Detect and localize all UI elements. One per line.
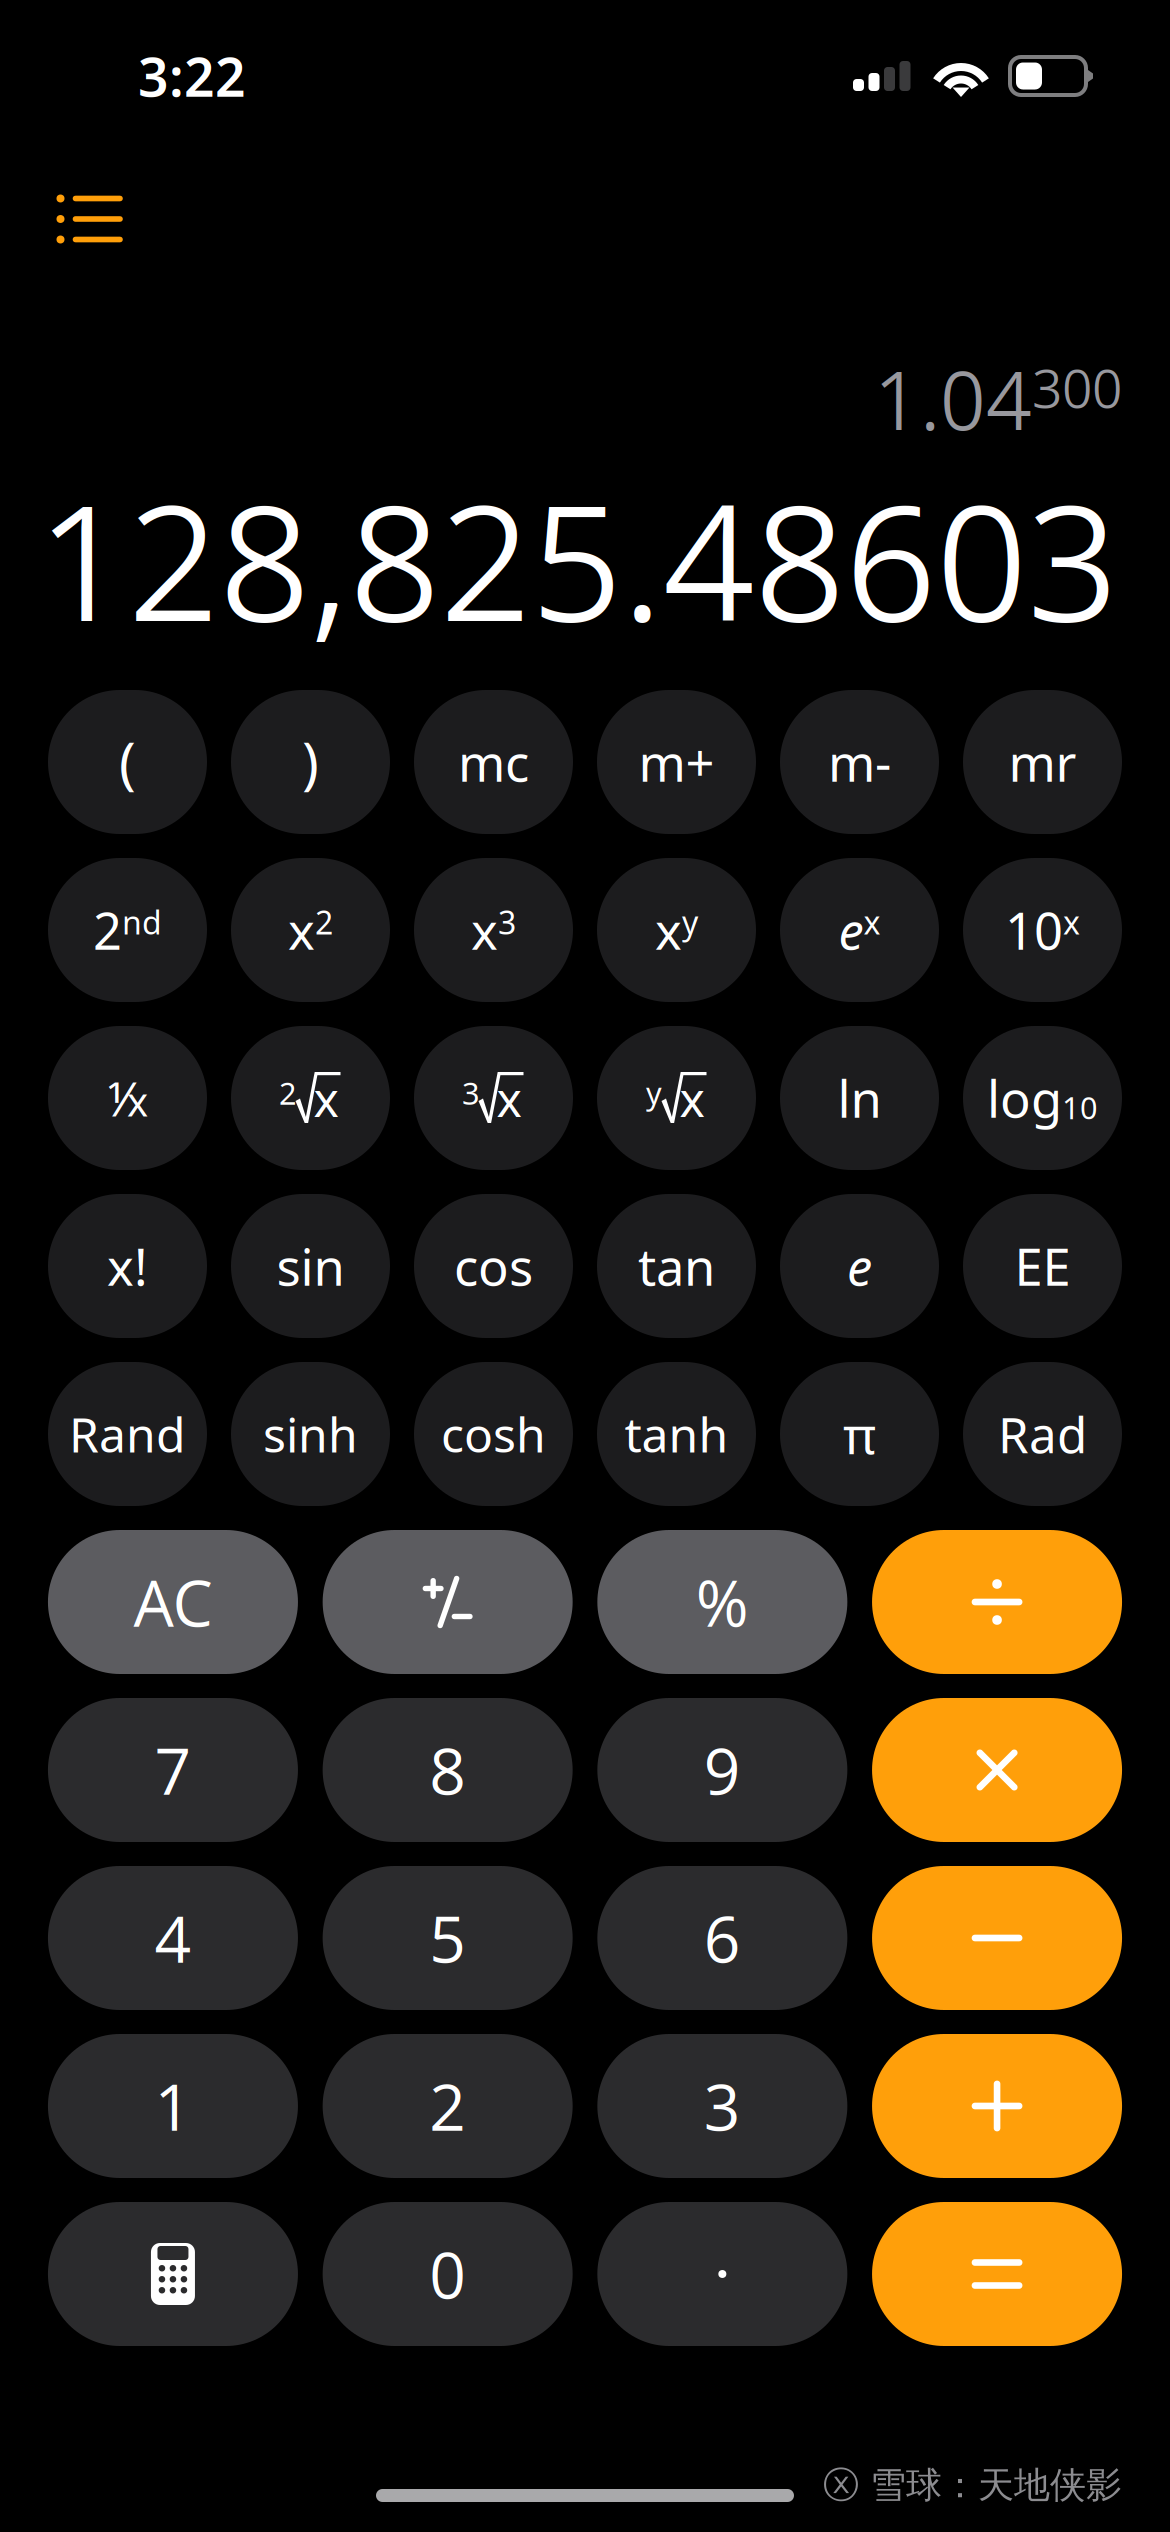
button[interactable]: 0 — [323, 2202, 573, 2346]
button[interactable]: tanh — [597, 1362, 756, 1506]
button[interactable]: cos — [414, 1194, 573, 1338]
staticText: m+ — [638, 727, 714, 796]
staticText: 2 — [279, 1072, 297, 1114]
staticText: ln — [837, 1063, 881, 1132]
button[interactable]: Multiply — [872, 1698, 1122, 1842]
staticText: 4 — [154, 1894, 191, 1982]
button[interactable]: EE — [963, 1194, 1122, 1338]
button[interactable]: cube root — [414, 1026, 573, 1170]
staticText: e — [847, 1231, 872, 1300]
staticText: tanh — [624, 1401, 728, 1467]
staticText: 3 — [462, 1072, 480, 1114]
staticText: mc — [458, 727, 529, 796]
button[interactable]: log base 10 — [963, 1026, 1122, 1170]
button[interactable]: ( — [48, 690, 207, 834]
button[interactable]: 7 — [48, 1698, 298, 1842]
staticText: 8 — [429, 1726, 466, 1814]
button[interactable]: ln — [780, 1026, 939, 1170]
button[interactable]: m+ — [597, 690, 756, 834]
button[interactable]: Plus minus — [323, 1530, 573, 1674]
button[interactable]: Plus — [872, 2034, 1122, 2178]
staticText: y — [646, 1072, 662, 1114]
button[interactable]: Minus — [872, 1866, 1122, 2010]
staticText: x! — [107, 1231, 148, 1300]
staticText: x — [496, 1066, 521, 1131]
button[interactable]: y-th root — [597, 1026, 756, 1170]
button[interactable]: 4 — [48, 1866, 298, 2010]
button[interactable]: 9 — [597, 1698, 847, 1842]
staticText: 1.04300 — [874, 346, 1122, 452]
button[interactable]: Decimal point — [597, 2202, 847, 2346]
button[interactable]: 1 — [48, 2034, 298, 2178]
button[interactable]: 2nd — [48, 858, 207, 1002]
staticText: % — [696, 1558, 749, 1646]
staticText: Rad — [998, 1400, 1087, 1468]
button[interactable]: 10 to the x — [963, 858, 1122, 1002]
staticText: xy — [655, 896, 698, 964]
button[interactable]: 6 — [597, 1866, 847, 2010]
button[interactable]: one over x — [48, 1026, 207, 1170]
staticText: cosh — [441, 1401, 546, 1467]
button[interactable]: mc — [414, 690, 573, 834]
staticText: x2 — [288, 896, 333, 964]
button[interactable]: ) — [231, 690, 390, 834]
button[interactable]: Rand — [48, 1362, 207, 1506]
button[interactable]: sin — [231, 1194, 390, 1338]
staticText: 3:22 — [138, 40, 246, 112]
button[interactable]: e to the x — [780, 858, 939, 1002]
button[interactable]: cosh — [414, 1362, 573, 1506]
button[interactable]: 3 — [597, 2034, 847, 2178]
button[interactable]: Equals — [872, 2202, 1122, 2346]
staticText: ( — [119, 724, 136, 800]
staticText: 1 — [154, 2062, 191, 2150]
button[interactable]: mr — [963, 690, 1122, 834]
button[interactable]: tan — [597, 1194, 756, 1338]
staticText: sin — [276, 1231, 344, 1300]
staticText: x — [679, 1066, 704, 1131]
staticText: 10x — [1005, 896, 1080, 964]
button[interactable]: Basic calculator — [48, 2202, 298, 2346]
button[interactable]: Rad — [963, 1362, 1122, 1506]
staticText: 9 — [704, 1726, 741, 1814]
staticText: AC — [133, 1558, 212, 1646]
staticText: 6 — [704, 1894, 741, 1982]
staticText: mr — [1008, 727, 1076, 796]
staticText: m- — [828, 727, 891, 796]
staticText: 7 — [154, 1726, 191, 1814]
staticText: ex — [838, 896, 880, 964]
button[interactable]: x cubed — [414, 858, 573, 1002]
staticText: Rand — [69, 1401, 186, 1467]
staticText: 128,825.48603 — [37, 450, 1118, 668]
button[interactable]: x squared — [231, 858, 390, 1002]
staticText: 2nd — [93, 896, 162, 964]
button[interactable]: AC — [48, 1530, 298, 1674]
button[interactable]: e — [780, 1194, 939, 1338]
button[interactable]: square root — [231, 1026, 390, 1170]
staticText: 3 — [704, 2062, 741, 2150]
staticText: π — [843, 1399, 876, 1468]
button[interactable]: x! — [48, 1194, 207, 1338]
button[interactable]: x to the power y — [597, 858, 756, 1002]
button[interactable]: 5 — [323, 1866, 573, 2010]
staticText: cos — [454, 1231, 533, 1300]
staticText: ⅟x — [107, 1066, 148, 1130]
staticText: ⓧ 雪球：天地侠影 — [823, 2463, 1122, 2508]
staticText: log10 — [987, 1064, 1098, 1132]
staticText: x — [313, 1066, 338, 1131]
staticText: ) — [302, 724, 319, 800]
button[interactable]: Divide — [872, 1530, 1122, 1674]
staticText: tan — [638, 1231, 715, 1300]
staticText: EE — [1014, 1231, 1070, 1300]
button[interactable]: % — [597, 1530, 847, 1674]
staticText: 5 — [429, 1894, 466, 1982]
staticText: 0 — [429, 2230, 466, 2318]
button[interactable]: 8 — [323, 1698, 573, 1842]
button[interactable]: π — [780, 1362, 939, 1506]
button[interactable]: History — [56, 176, 156, 262]
button[interactable]: 2 — [323, 2034, 573, 2178]
staticText: x3 — [471, 896, 516, 964]
button[interactable]: m- — [780, 690, 939, 834]
staticText: 2 — [429, 2062, 466, 2150]
button[interactable]: sinh — [231, 1362, 390, 1506]
staticText: sinh — [263, 1401, 358, 1467]
